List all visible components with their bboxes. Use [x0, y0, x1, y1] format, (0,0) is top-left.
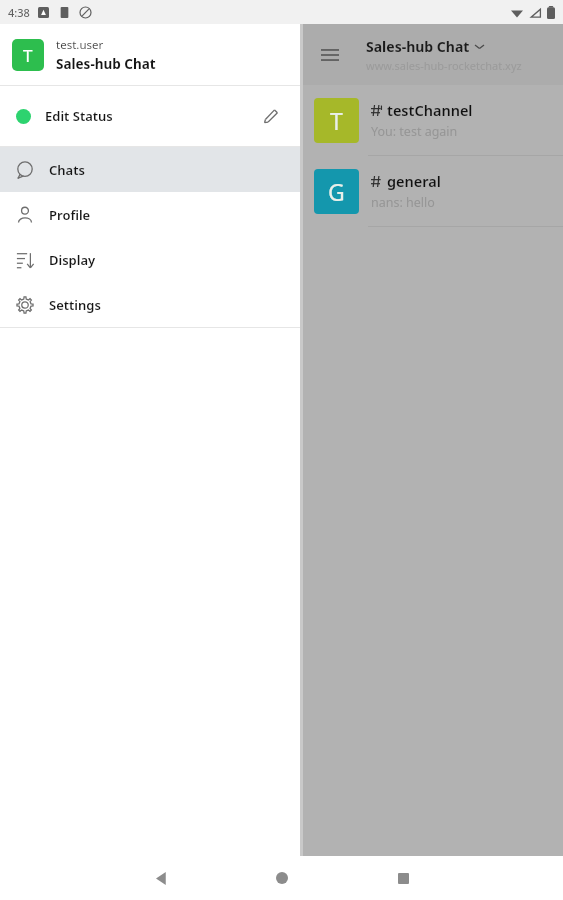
button[interactable]: Edit Status: [0, 86, 300, 146]
staticText: T: [330, 105, 343, 136]
staticText: T: [23, 44, 33, 67]
staticText: Profile: [49, 206, 91, 224]
button[interactable]: Back: [140, 856, 184, 900]
button[interactable]: Settings: [0, 282, 300, 327]
button[interactable]: T: [0, 24, 300, 85]
staticText: test.user: [56, 37, 104, 53]
staticText: Edit Status: [45, 107, 113, 125]
button[interactable]: Display: [0, 237, 300, 282]
button[interactable]: Open navigation menu: [310, 35, 350, 75]
button[interactable]: T: [300, 85, 563, 155]
staticText: 4:38: [8, 5, 30, 20]
staticText: www.sales-hub-rocketchat.xyz: [366, 58, 522, 73]
button[interactable]: Home: [260, 856, 304, 900]
staticText: nans: hello: [371, 194, 435, 211]
staticText: Sales-hub Chat: [56, 55, 156, 73]
staticText: You: test again: [371, 123, 458, 140]
button[interactable]: G: [300, 156, 563, 226]
staticText: Chats: [49, 161, 85, 179]
staticText: Display: [49, 251, 96, 269]
staticText: general: [387, 171, 441, 191]
button[interactable]: Chats: [0, 147, 300, 192]
staticText: testChannel: [387, 100, 473, 120]
staticText: Settings: [49, 296, 101, 314]
staticText: Sales-hub Chat: [366, 37, 470, 56]
button[interactable]: Edit status: [258, 103, 284, 129]
button[interactable]: Profile: [0, 192, 300, 237]
button[interactable]: Recent apps: [381, 856, 425, 900]
staticText: G: [328, 176, 345, 207]
